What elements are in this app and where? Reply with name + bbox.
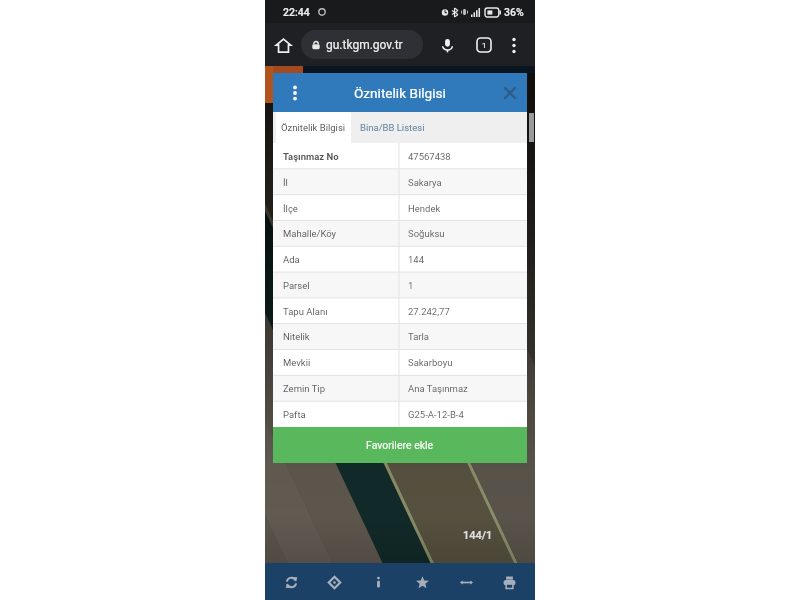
button[interactable]: Taşınmaz No [273,143,527,169]
button[interactable]: Nitelik [273,323,527,349]
staticText: Parsel [283,280,310,291]
staticText: İlçe [283,203,298,214]
staticText: 27.242,77 [408,306,450,317]
staticText: Ada [283,254,300,265]
staticText: Bina/BB Listesi [360,122,425,133]
staticText: Hendek [408,203,441,214]
staticText: Nitelik [283,331,310,342]
button[interactable]: gu.tkgm.gov.tr [301,30,423,59]
staticText: Öznitelik Bilgisi [281,122,346,133]
button[interactable]: More options [499,30,529,60]
staticText: G25-A-12-B-4 [408,409,464,420]
staticText: Zemin Tip [283,383,326,394]
staticText: Taşınmaz No [283,151,339,162]
button[interactable]: Close [498,81,522,105]
staticText: Favorilere ekle [366,439,434,451]
staticText: 47567438 [408,151,451,162]
button[interactable]: Tabs [469,30,499,60]
button[interactable]: Parsel [273,272,527,298]
staticText: Tapu Alanı [283,306,328,317]
staticText: 22:44 [283,6,310,18]
button[interactable]: Info [360,564,396,600]
staticText: 1 [482,41,487,50]
staticText: Sakarboyu [408,357,453,368]
button[interactable]: Locate [316,564,352,600]
button[interactable]: Favorilere ekle [273,427,527,463]
staticText: 144 [408,254,425,265]
button[interactable]: Mahalle/Köy [273,220,527,246]
button[interactable]: Zemin Tip [273,375,527,401]
staticText: 1 [408,280,414,291]
button[interactable]: Measure [448,564,484,600]
staticText: 36% [504,6,524,18]
button[interactable]: Menu [282,80,308,106]
button[interactable]: Ada [273,246,527,272]
button[interactable]: Refresh [273,564,309,600]
staticText: gu.tkgm.gov.tr [326,38,403,52]
button[interactable]: Öznitelik Bilgisi [276,112,351,143]
staticText: Öznitelik Bilgisi [354,85,446,101]
button[interactable]: Print [491,564,527,600]
staticText: İl [283,177,288,188]
button[interactable]: Voice search [432,30,462,60]
staticText: Sakarya [408,177,442,188]
staticText: 144/1 [463,529,493,542]
staticText: Tarla [408,331,430,342]
staticText: Ana Taşınmaz [408,383,468,394]
staticText: Mahalle/Köy [283,228,337,239]
button[interactable]: Favorites [404,564,440,600]
button[interactable]: Mevkii [273,349,527,375]
button[interactable]: İl [273,169,527,195]
button[interactable]: Tapu Alanı [273,298,527,324]
button[interactable]: Home [268,30,298,60]
staticText: Mevkii [283,357,311,368]
staticText: Soğuksu [408,228,445,239]
button[interactable]: Bina/BB Listesi [349,112,435,143]
button[interactable]: İlçe [273,195,527,221]
staticText: Pafta [283,409,306,420]
button[interactable]: Pafta [273,401,527,427]
